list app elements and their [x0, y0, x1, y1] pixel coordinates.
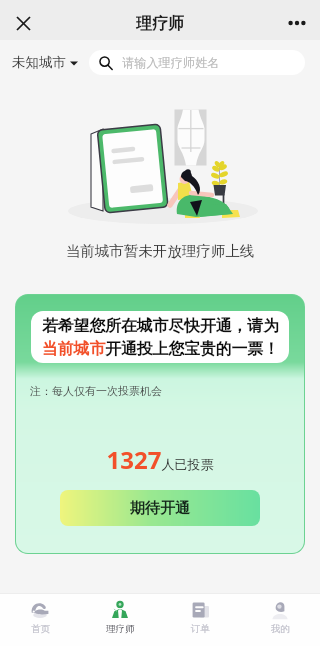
- staticText: 未知城市: [12, 54, 66, 71]
- staticText: 理疗师: [136, 14, 184, 34]
- button[interactable]: 订单: [160, 594, 240, 646]
- staticText: 若希望您所在城市尽快开通，请为: [42, 316, 279, 336]
- button[interactable]: 我的: [240, 594, 320, 646]
- staticText: 注：每人仅有一次投票机会: [30, 384, 162, 398]
- button[interactable]: 理疗师: [80, 594, 160, 646]
- staticText: 理疗师: [106, 623, 135, 635]
- button[interactable]: 请输入理疗师姓名: [89, 50, 305, 75]
- button[interactable]: 首页: [0, 594, 80, 646]
- staticText: 期待开通: [130, 499, 190, 518]
- button[interactable]: More options: [281, 7, 313, 39]
- staticText: 当前城市开通投上您宝贵的一票！: [42, 339, 279, 359]
- staticText: 我的: [271, 623, 290, 635]
- button[interactable]: 未知城市: [12, 54, 78, 71]
- button[interactable]: Close: [8, 8, 38, 38]
- staticText: 首页: [31, 623, 50, 635]
- staticText: 请输入理疗师姓名: [122, 55, 220, 70]
- staticText: 订单: [191, 623, 210, 635]
- staticText: 1327人已投票: [16, 443, 304, 476]
- button[interactable]: 期待开通: [60, 490, 260, 526]
- staticText: 当前城市暂未开放理疗师上线: [0, 242, 320, 260]
